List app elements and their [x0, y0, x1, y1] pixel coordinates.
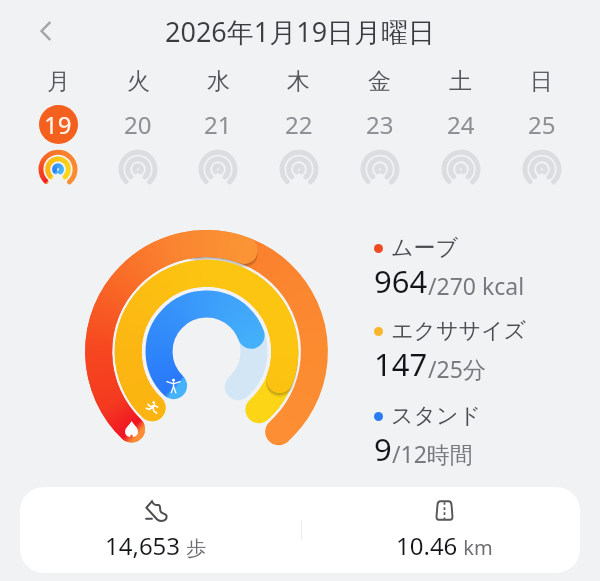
button[interactable]: 土	[420, 58, 501, 198]
staticText: /270 kcal	[428, 270, 525, 301]
button[interactable]: 14,653	[20, 487, 300, 573]
staticText: /12時間	[392, 438, 473, 469]
button[interactable]: 月	[18, 58, 98, 198]
staticText: 25	[528, 108, 556, 141]
staticText: エクササイズ	[391, 317, 527, 345]
button[interactable]: 日	[501, 58, 582, 198]
staticText: スタンド	[391, 402, 482, 430]
button[interactable]: ムーブ	[374, 234, 525, 304]
button[interactable]: エクササイズ	[374, 317, 527, 387]
staticText: 日	[530, 67, 553, 96]
button[interactable]: 10.46	[300, 487, 580, 573]
staticText: 14,653	[105, 529, 181, 562]
staticText: ムーブ	[391, 234, 459, 262]
staticText: 火	[127, 67, 150, 96]
staticText: 9	[374, 428, 392, 470]
staticText: 964	[374, 260, 428, 302]
staticText: 金	[368, 67, 391, 96]
button[interactable]: 水	[178, 58, 258, 198]
button[interactable]: 火	[98, 58, 178, 198]
staticText: 水	[207, 67, 230, 96]
staticText: 19	[44, 108, 72, 141]
staticText: 歩	[181, 534, 207, 561]
button[interactable]: Back	[24, 9, 68, 53]
staticText: km	[458, 534, 493, 561]
staticText: /25分	[428, 353, 486, 384]
staticText: 2026年1月19日月曜日	[165, 13, 436, 50]
button[interactable]: Activity rings	[80, 225, 333, 478]
staticText: 木	[287, 67, 310, 96]
button[interactable]: 木	[258, 58, 339, 198]
staticText: 21	[204, 108, 232, 141]
staticText: 土	[449, 67, 472, 96]
staticText: 24	[447, 108, 475, 141]
button[interactable]: 金	[339, 58, 420, 198]
staticText: 23	[366, 108, 394, 141]
staticText: 月	[47, 67, 70, 96]
staticText: 147	[374, 343, 428, 385]
staticText: 22	[285, 108, 313, 141]
staticText: 20	[124, 108, 152, 141]
staticText: 10.46	[396, 529, 458, 562]
button[interactable]: スタンド	[374, 402, 482, 472]
